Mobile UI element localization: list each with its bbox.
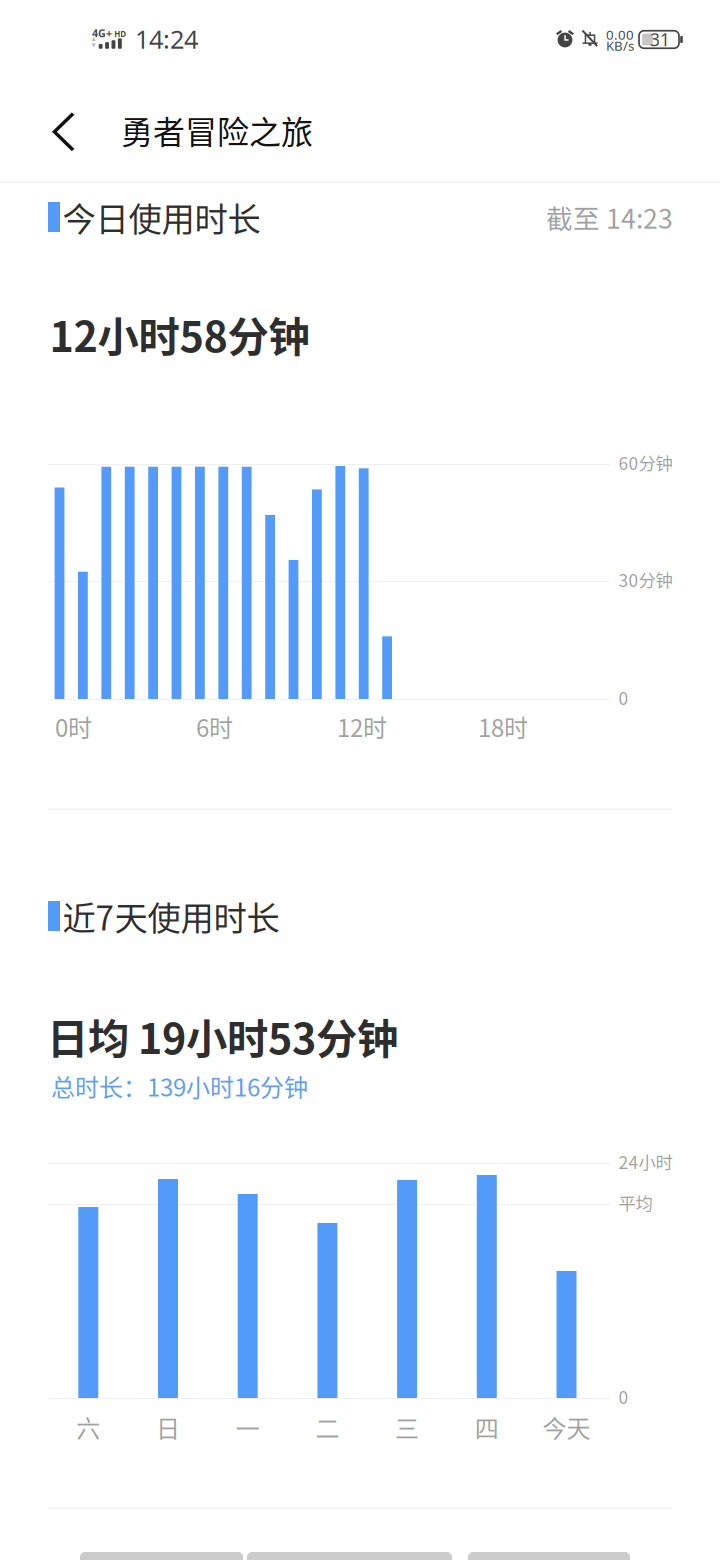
staticText: 60分钟 — [618, 450, 672, 475]
staticText: 平均 — [618, 1190, 652, 1215]
staticText: 6时 — [196, 709, 233, 744]
staticText: HD — [114, 28, 126, 39]
staticText: 24小时 — [618, 1149, 672, 1174]
staticText: 近7天使用时长 — [62, 892, 279, 940]
staticText: 14:24 — [135, 22, 198, 56]
staticText: 30分钟 — [618, 567, 672, 592]
staticText: 12小时58分钟 — [49, 304, 309, 364]
staticText: 今天 — [542, 1410, 590, 1444]
staticText: 一 — [236, 1410, 260, 1444]
staticText: 18时 — [478, 709, 528, 744]
staticText: 二 — [315, 1410, 339, 1444]
staticText: 0.00 — [606, 26, 634, 43]
staticText: 0 — [618, 1384, 628, 1409]
staticText: 4G+ — [92, 26, 112, 40]
staticText: 日均 19小时53分钟 — [47, 1006, 398, 1066]
staticText: 0 — [618, 685, 628, 710]
staticText: 三 — [395, 1410, 419, 1444]
staticText: 12时 — [337, 709, 387, 744]
staticText: 截至 14:23 — [546, 198, 673, 236]
staticText: 四 — [475, 1410, 499, 1444]
staticText: 0时 — [55, 709, 92, 744]
staticText: 勇者冒险之旅 — [121, 107, 313, 153]
staticText: KB/s — [606, 37, 634, 54]
staticText: 31 — [650, 28, 670, 51]
staticText: 日 — [156, 1410, 180, 1444]
button[interactable]: 应用 — [80, 1552, 243, 1560]
staticText: 今日使用时长 — [62, 193, 260, 241]
button[interactable]: 通知 — [247, 1552, 452, 1560]
staticText: 六 — [76, 1410, 100, 1444]
button[interactable]: 设置 — [468, 1552, 630, 1560]
staticText: 总时长：139小时16分钟 — [51, 1069, 308, 1103]
button[interactable]: 返回 — [38, 90, 114, 174]
